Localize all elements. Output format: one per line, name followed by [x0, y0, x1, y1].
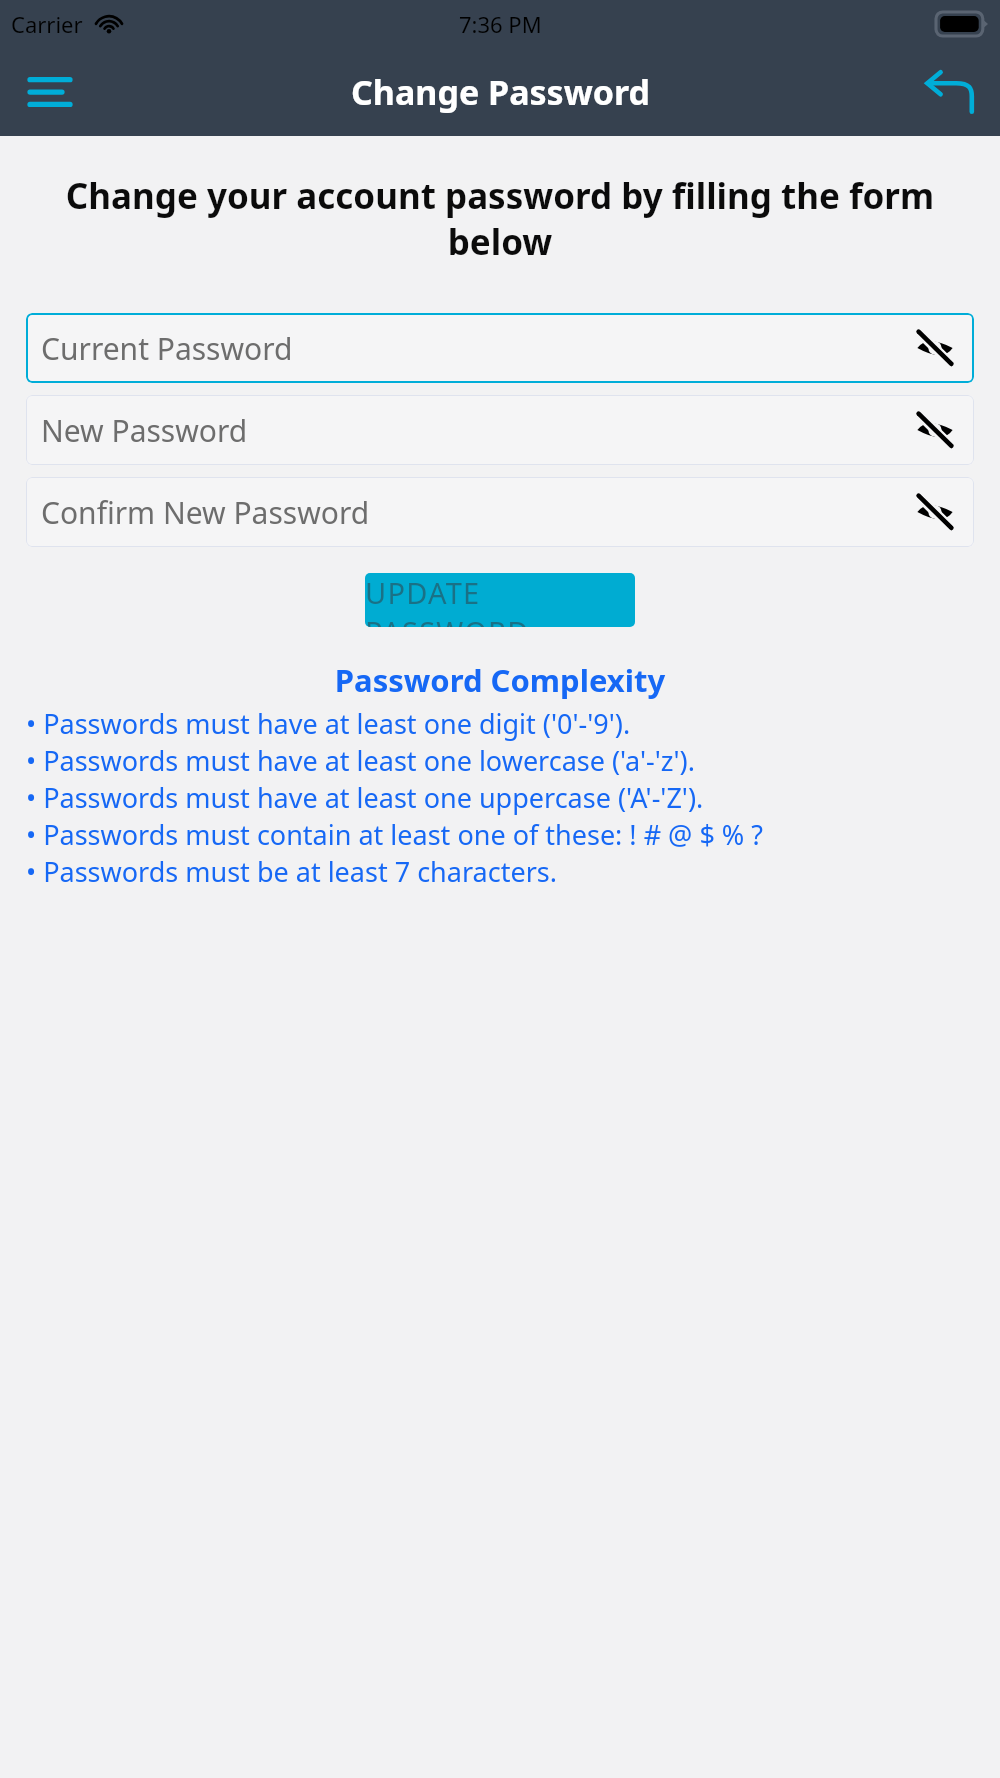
staticText: 7:36 PM	[459, 9, 542, 39]
staticText: UPDATE PASSWORD	[365, 573, 635, 627]
staticText: Password Complexity	[26, 659, 974, 701]
button[interactable]: Show password	[912, 325, 958, 371]
staticText: Change Password	[351, 69, 650, 115]
staticText: Confirm New Password	[41, 492, 370, 533]
staticText: Current Password	[41, 328, 293, 369]
button[interactable]: Confirm New Password	[26, 477, 974, 547]
staticText: New Password	[41, 410, 248, 451]
button[interactable]: Show password	[912, 407, 958, 453]
staticText: Carrier	[11, 9, 83, 39]
button[interactable]: Current Password	[26, 313, 974, 383]
staticText: Change your account password by filling …	[38, 172, 962, 265]
button[interactable]: UPDATE PASSWORD	[365, 573, 635, 627]
button[interactable]: Back	[920, 61, 982, 123]
staticText: • Passwords must be at least 7 character…	[26, 853, 974, 890]
button[interactable]: Show password	[912, 489, 958, 535]
button[interactable]: Menu	[22, 64, 78, 120]
staticText: • Passwords must have at least one digit…	[26, 705, 974, 742]
staticText: • Passwords must contain at least one of…	[26, 816, 974, 853]
staticText: • Passwords must have at least one lower…	[26, 742, 974, 779]
staticText: • Passwords must have at least one upper…	[26, 779, 974, 816]
button[interactable]: New Password	[26, 395, 974, 465]
